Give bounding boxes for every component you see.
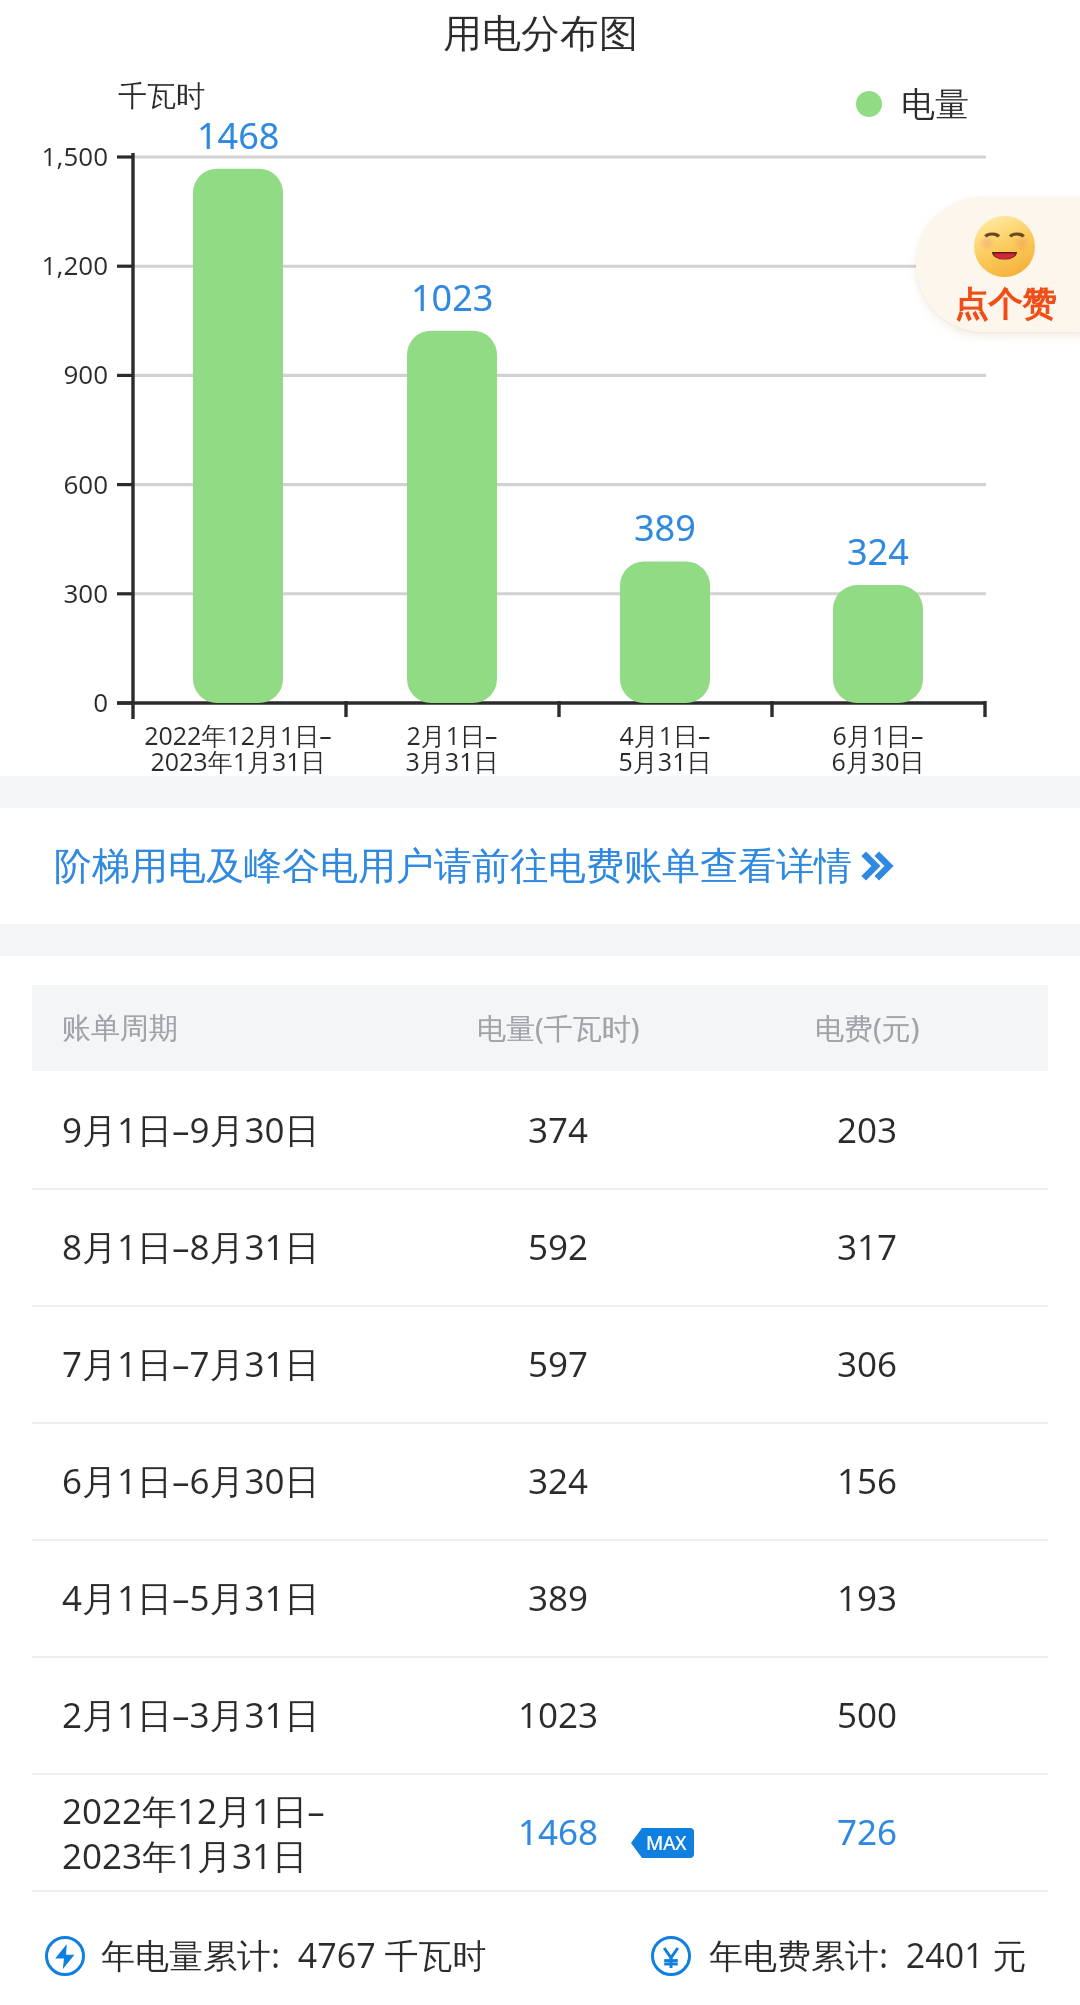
staticText: MAX bbox=[646, 1830, 687, 1856]
staticText: 193 bbox=[837, 1574, 898, 1622]
staticText: 用电分布图 bbox=[443, 9, 638, 58]
staticText: 千瓦时 bbox=[118, 78, 205, 115]
staticText: 1023 bbox=[518, 1691, 599, 1739]
staticText: 年电量累计: 4767 千瓦时 bbox=[101, 1932, 487, 1978]
staticText: 2月1日–3月31日 bbox=[62, 1691, 320, 1739]
staticText: 389 bbox=[528, 1574, 589, 1622]
staticText: 324 bbox=[528, 1457, 589, 1505]
staticText: 300 bbox=[63, 575, 108, 610]
staticText: 900 bbox=[63, 356, 108, 391]
staticText: 点个赞 bbox=[954, 283, 1056, 326]
staticText: 2022年12月1日– 2023年1月31日 bbox=[62, 1787, 325, 1879]
staticText: 阶梯用电及峰谷电用户请前往电费账单查看详情 bbox=[54, 842, 852, 890]
staticText: 324 bbox=[847, 527, 909, 576]
staticText: 电费(元) bbox=[815, 1008, 920, 1048]
staticText: 1468 bbox=[197, 111, 280, 160]
staticText: 2022年12月1日– 2023年1月31日 bbox=[123, 718, 353, 778]
staticText: 389 bbox=[634, 503, 696, 552]
staticText: 6月1日– 6月30日 bbox=[763, 718, 993, 778]
button[interactable]: 阶梯用电及峰谷电用户请前往电费账单查看详情 bbox=[0, 808, 1080, 924]
button[interactable]: 8月1日–8月31日 bbox=[32, 1188, 1048, 1305]
staticText: 电量(千瓦时) bbox=[477, 1008, 640, 1048]
button[interactable]: 4月1日–5月31日 bbox=[32, 1539, 1048, 1656]
staticText: 203 bbox=[837, 1106, 898, 1154]
staticText: 1468 bbox=[518, 1808, 599, 1856]
staticText: 2月1日– 3月31日 bbox=[337, 718, 567, 778]
staticText: 374 bbox=[528, 1106, 589, 1154]
staticText: 6月1日–6月30日 bbox=[62, 1457, 320, 1505]
button[interactable]: 6月1日–6月30日 bbox=[32, 1422, 1048, 1539]
button[interactable]: 2月1日–3月31日 bbox=[32, 1656, 1048, 1773]
button[interactable]: 7月1日–7月31日 bbox=[32, 1305, 1048, 1422]
staticText: 592 bbox=[528, 1223, 589, 1271]
staticText: 7月1日–7月31日 bbox=[62, 1340, 320, 1388]
staticText: 597 bbox=[528, 1340, 589, 1388]
button[interactable]: 点个赞 bbox=[916, 197, 1080, 332]
staticText: 317 bbox=[837, 1223, 898, 1271]
button[interactable]: 9月1日–9月30日 bbox=[32, 1071, 1048, 1188]
staticText: 1023 bbox=[411, 273, 494, 322]
staticText: 156 bbox=[837, 1457, 898, 1505]
staticText: 9月1日–9月30日 bbox=[62, 1106, 320, 1154]
staticText: 1,200 bbox=[41, 247, 108, 282]
staticText: 4月1日–5月31日 bbox=[62, 1574, 320, 1622]
staticText: 电量 bbox=[901, 83, 969, 125]
staticText: 4月1日– 5月31日 bbox=[550, 718, 780, 778]
staticText: 500 bbox=[837, 1691, 898, 1739]
staticText: 600 bbox=[63, 466, 108, 501]
staticText: 0 bbox=[93, 684, 108, 719]
button[interactable]: 2022年12月1日– 2023年1月31日 bbox=[32, 1773, 1048, 1890]
staticText: 账单周期 bbox=[62, 1010, 178, 1047]
staticText: 8月1日–8月31日 bbox=[62, 1223, 320, 1271]
staticText: 726 bbox=[837, 1808, 898, 1856]
staticText: 306 bbox=[837, 1340, 898, 1388]
staticText: 1,500 bbox=[41, 138, 108, 173]
staticText: 年电费累计: 2401 元 bbox=[709, 1932, 1027, 1978]
